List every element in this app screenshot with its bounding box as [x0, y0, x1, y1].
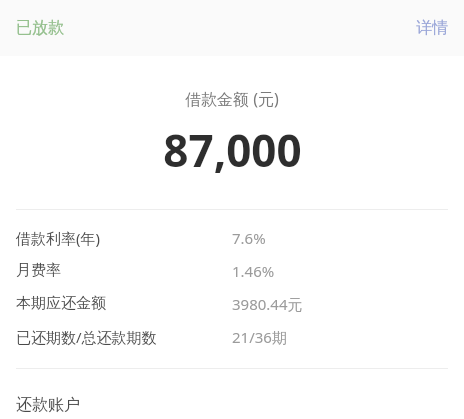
- staticText: 3980.44元: [232, 294, 303, 314]
- button[interactable]: 月费率: [0, 254, 464, 287]
- staticText: 已放款: [16, 18, 64, 38]
- staticText: 借款利率(年): [16, 228, 101, 248]
- button[interactable]: 本期应还金额: [0, 287, 464, 320]
- button[interactable]: 已还期数/总还款期数: [0, 320, 464, 353]
- staticText: 月费率: [16, 261, 61, 280]
- staticText: 87,000: [163, 120, 302, 180]
- staticText: 1.46%: [232, 261, 275, 281]
- button[interactable]: 还款账户: [0, 393, 464, 417]
- staticText: 本期应还金额: [16, 294, 106, 313]
- button[interactable]: 详情: [404, 12, 464, 44]
- button[interactable]: 已放款: [0, 12, 76, 44]
- staticText: 7.6%: [232, 228, 266, 248]
- staticText: 已还期数/总还款期数: [16, 327, 157, 347]
- staticText: 借款金额 (元): [185, 88, 279, 110]
- staticText: 详情: [416, 18, 448, 38]
- button[interactable]: 借款利率(年): [0, 221, 464, 254]
- staticText: 21/36期: [232, 327, 287, 347]
- staticText: 还款账户: [16, 395, 80, 415]
